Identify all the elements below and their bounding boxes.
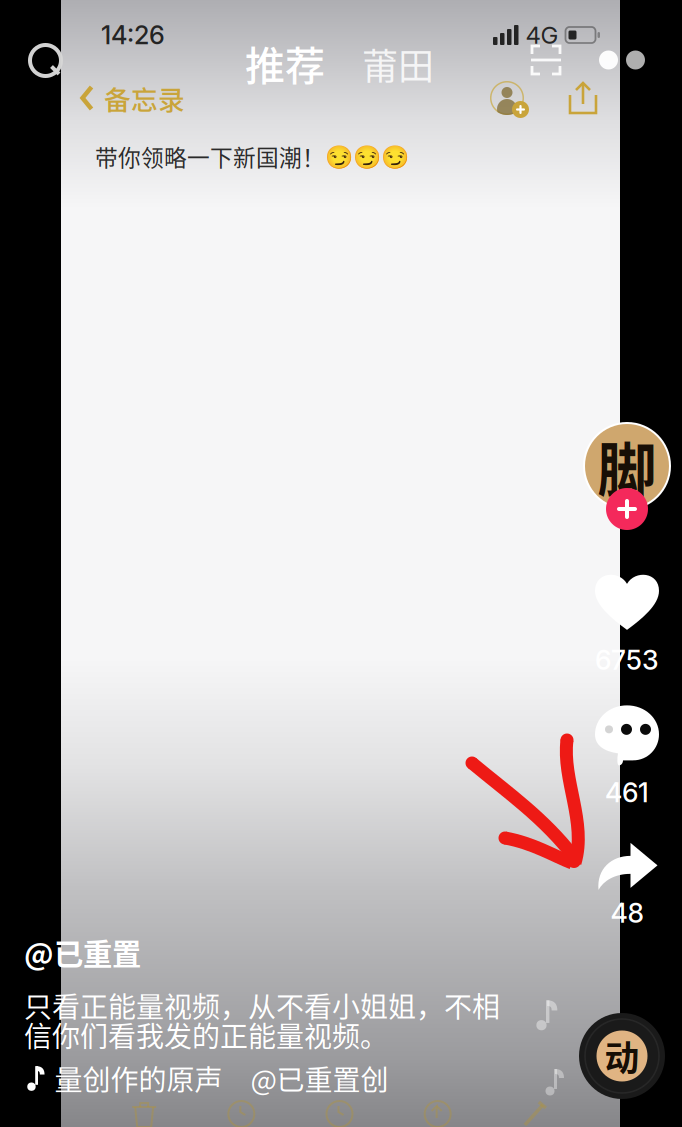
button[interactable]: Original sound bbox=[579, 1013, 665, 1099]
staticText: @已重置 bbox=[24, 931, 141, 973]
staticText: 推荐 bbox=[245, 34, 325, 92]
staticText: 莆田 bbox=[362, 38, 434, 90]
staticText: 4G bbox=[525, 20, 558, 49]
staticText: 带你领略一下新国潮！😏😏😏 bbox=[95, 140, 409, 173]
staticText: 量创作的原声 @已重置创 bbox=[54, 1058, 388, 1098]
button[interactable]: 461 bbox=[594, 703, 660, 809]
button[interactable]: Back to Notes bbox=[79, 73, 195, 123]
button[interactable]: 48 bbox=[595, 841, 658, 929]
button[interactable]: 推荐 bbox=[237, 30, 333, 96]
staticText: 脚 bbox=[597, 423, 656, 508]
button[interactable]: 6753 bbox=[593, 570, 661, 676]
button[interactable]: Search bbox=[28, 43, 68, 83]
staticText: 461 bbox=[605, 776, 649, 809]
staticText: 备忘录 bbox=[104, 79, 185, 117]
button[interactable]: Creator @已重置 bbox=[24, 929, 141, 975]
button[interactable]: Share Note bbox=[568, 80, 598, 116]
staticText: 动 bbox=[604, 1031, 639, 1081]
button[interactable]: Add People bbox=[486, 78, 528, 118]
button[interactable]: Follow creator bbox=[584, 412, 670, 519]
staticText: 48 bbox=[610, 897, 643, 929]
staticText: 只看正能量视频，从不看小姐姐，不相信你们看我发的正能量视频。 bbox=[24, 985, 500, 1055]
button[interactable]: More bbox=[599, 50, 645, 69]
staticText: 14:26 bbox=[101, 20, 165, 50]
staticText: 6753 bbox=[595, 644, 659, 676]
button[interactable]: Original sound by 已重置 bbox=[24, 1058, 388, 1098]
button[interactable]: Scan bbox=[530, 44, 562, 76]
button[interactable]: 莆田 bbox=[354, 34, 442, 94]
